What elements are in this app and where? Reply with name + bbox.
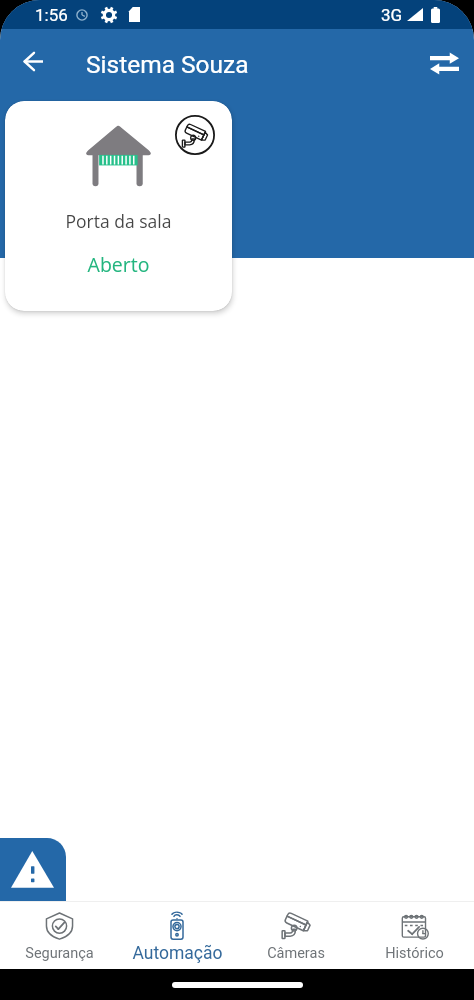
button[interactable]: Câmeras bbox=[236, 901, 355, 969]
button[interactable]: Voltar bbox=[10, 38, 56, 84]
staticText: Aberto bbox=[5, 251, 232, 278]
staticText: Automação bbox=[132, 943, 223, 964]
button[interactable]: Histórico bbox=[355, 901, 474, 969]
button[interactable]: Segurança bbox=[0, 901, 118, 969]
staticText: 3G bbox=[381, 5, 403, 25]
button[interactable]: Alternar bbox=[421, 40, 467, 86]
button[interactable]: Pânico bbox=[0, 838, 66, 901]
staticText: Sistema Souza bbox=[86, 50, 249, 79]
staticText: Segurança bbox=[25, 945, 94, 962]
button[interactable]: Porta da sala bbox=[5, 101, 232, 311]
button[interactable]: Câmera bbox=[167, 107, 223, 163]
button[interactable]: Automação bbox=[118, 901, 236, 969]
staticText: Câmeras bbox=[267, 945, 325, 962]
staticText: Histórico bbox=[385, 945, 444, 962]
staticText: 1:56 bbox=[35, 5, 68, 25]
staticText: Porta da sala bbox=[5, 209, 232, 233]
